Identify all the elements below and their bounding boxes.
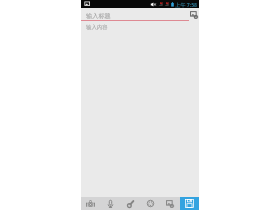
button[interactable]: Brush [120, 197, 140, 210]
button[interactable]: Save [180, 197, 199, 210]
button[interactable]: Add image [160, 197, 180, 210]
staticText: 上午 7:58 [175, 1, 198, 8]
button[interactable]: Palette [140, 197, 160, 210]
button[interactable]: Camera [81, 197, 100, 210]
button[interactable]: Voice record [100, 197, 120, 210]
staticText: 输入标题 [86, 12, 111, 20]
staticText: 输入内容 [86, 24, 108, 31]
button[interactable]: Insert image [189, 10, 198, 19]
